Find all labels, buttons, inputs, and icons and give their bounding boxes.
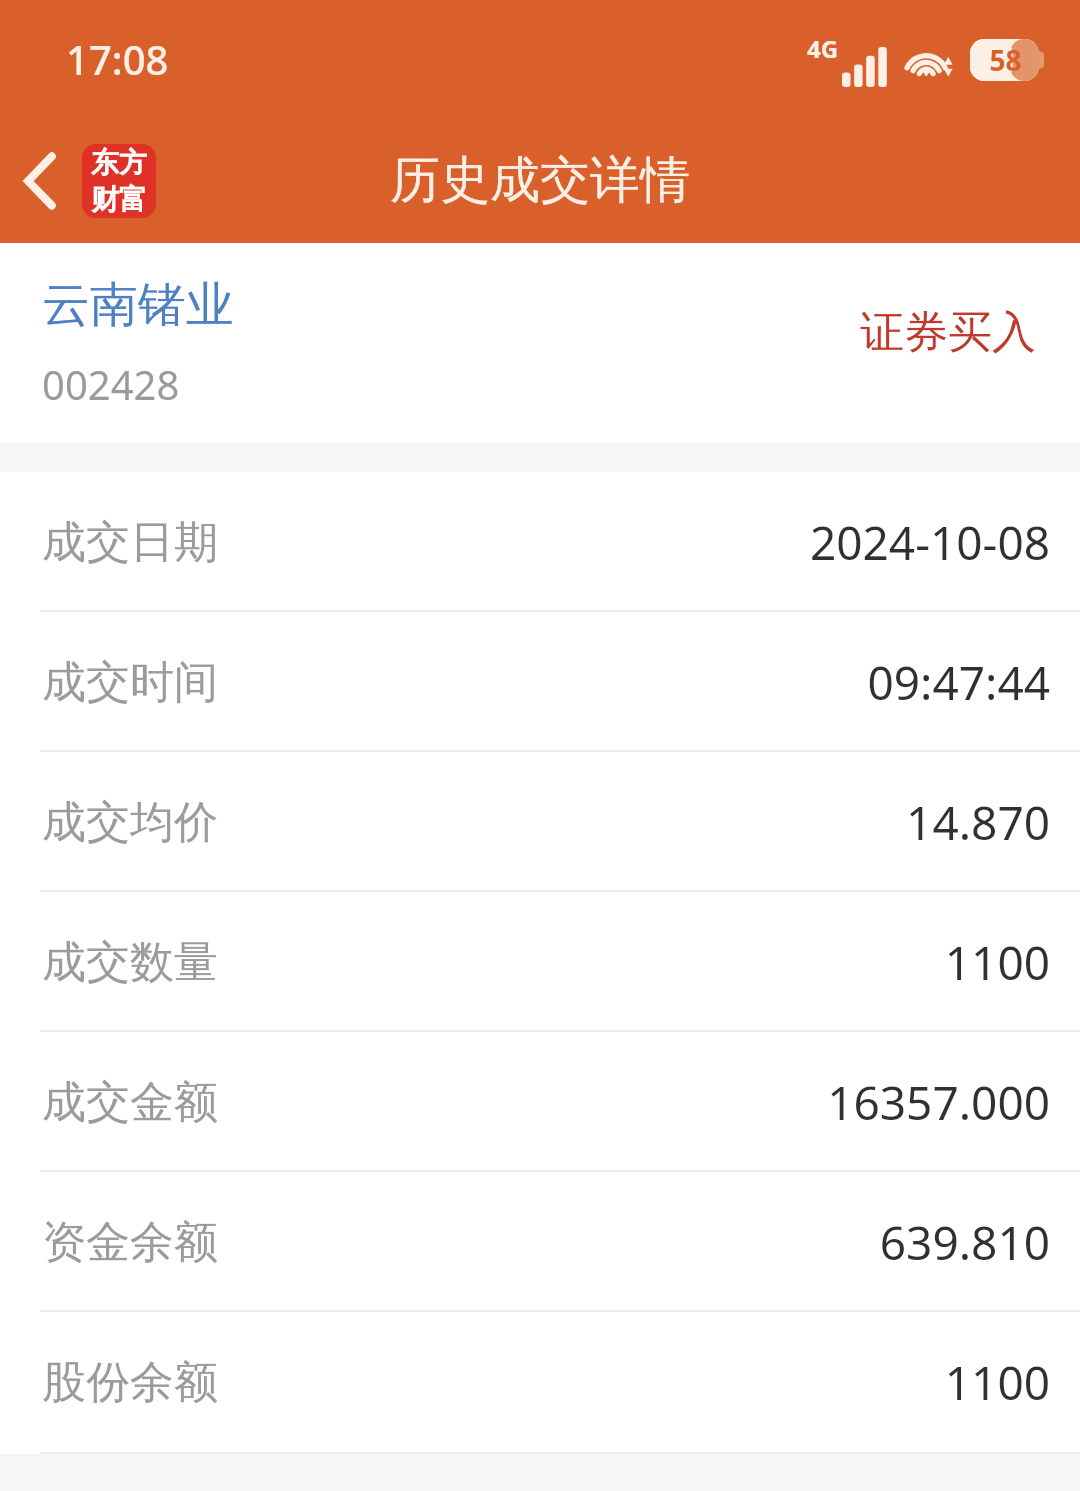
- staticText: 2024-10-08: [809, 511, 1050, 574]
- staticText: 历史成交详情: [390, 149, 690, 212]
- button[interactable]: Back: [0, 118, 82, 243]
- staticText: 云南锗业: [42, 275, 234, 335]
- staticText: 东方: [91, 145, 147, 180]
- button[interactable]: 成交数量: [0, 892, 1080, 1032]
- staticText: 财富: [91, 182, 147, 217]
- button[interactable]: 云南锗业: [0, 243, 1080, 443]
- staticText: 17:08: [66, 32, 169, 86]
- button[interactable]: 成交日期: [0, 472, 1080, 612]
- staticText: 09:47:44: [867, 651, 1050, 714]
- staticText: 4G: [807, 32, 839, 65]
- staticText: 16357.000: [827, 1071, 1050, 1134]
- staticText: 002428: [42, 357, 180, 411]
- staticText: 成交时间: [42, 655, 218, 710]
- staticText: 证券买入: [860, 305, 1036, 360]
- button[interactable]: 资金余额: [0, 1172, 1080, 1312]
- staticText: 1100: [944, 1351, 1050, 1414]
- staticText: 股份余额: [42, 1355, 218, 1410]
- staticText: 成交日期: [42, 515, 218, 570]
- staticText: 成交金额: [42, 1075, 218, 1130]
- staticText: 成交数量: [42, 935, 218, 990]
- staticText: 资金余额: [42, 1215, 218, 1270]
- button[interactable]: 成交时间: [0, 612, 1080, 752]
- staticText: 639.810: [879, 1211, 1050, 1274]
- button[interactable]: East Money logo: [82, 144, 156, 218]
- button[interactable]: 成交均价: [0, 752, 1080, 892]
- staticText: 14.870: [906, 791, 1050, 854]
- staticText: 1100: [944, 931, 1050, 994]
- staticText: 58: [972, 41, 1039, 79]
- staticText: 成交均价: [42, 795, 218, 850]
- button[interactable]: 成交金额: [0, 1032, 1080, 1172]
- button[interactable]: 股份余额: [0, 1312, 1080, 1452]
